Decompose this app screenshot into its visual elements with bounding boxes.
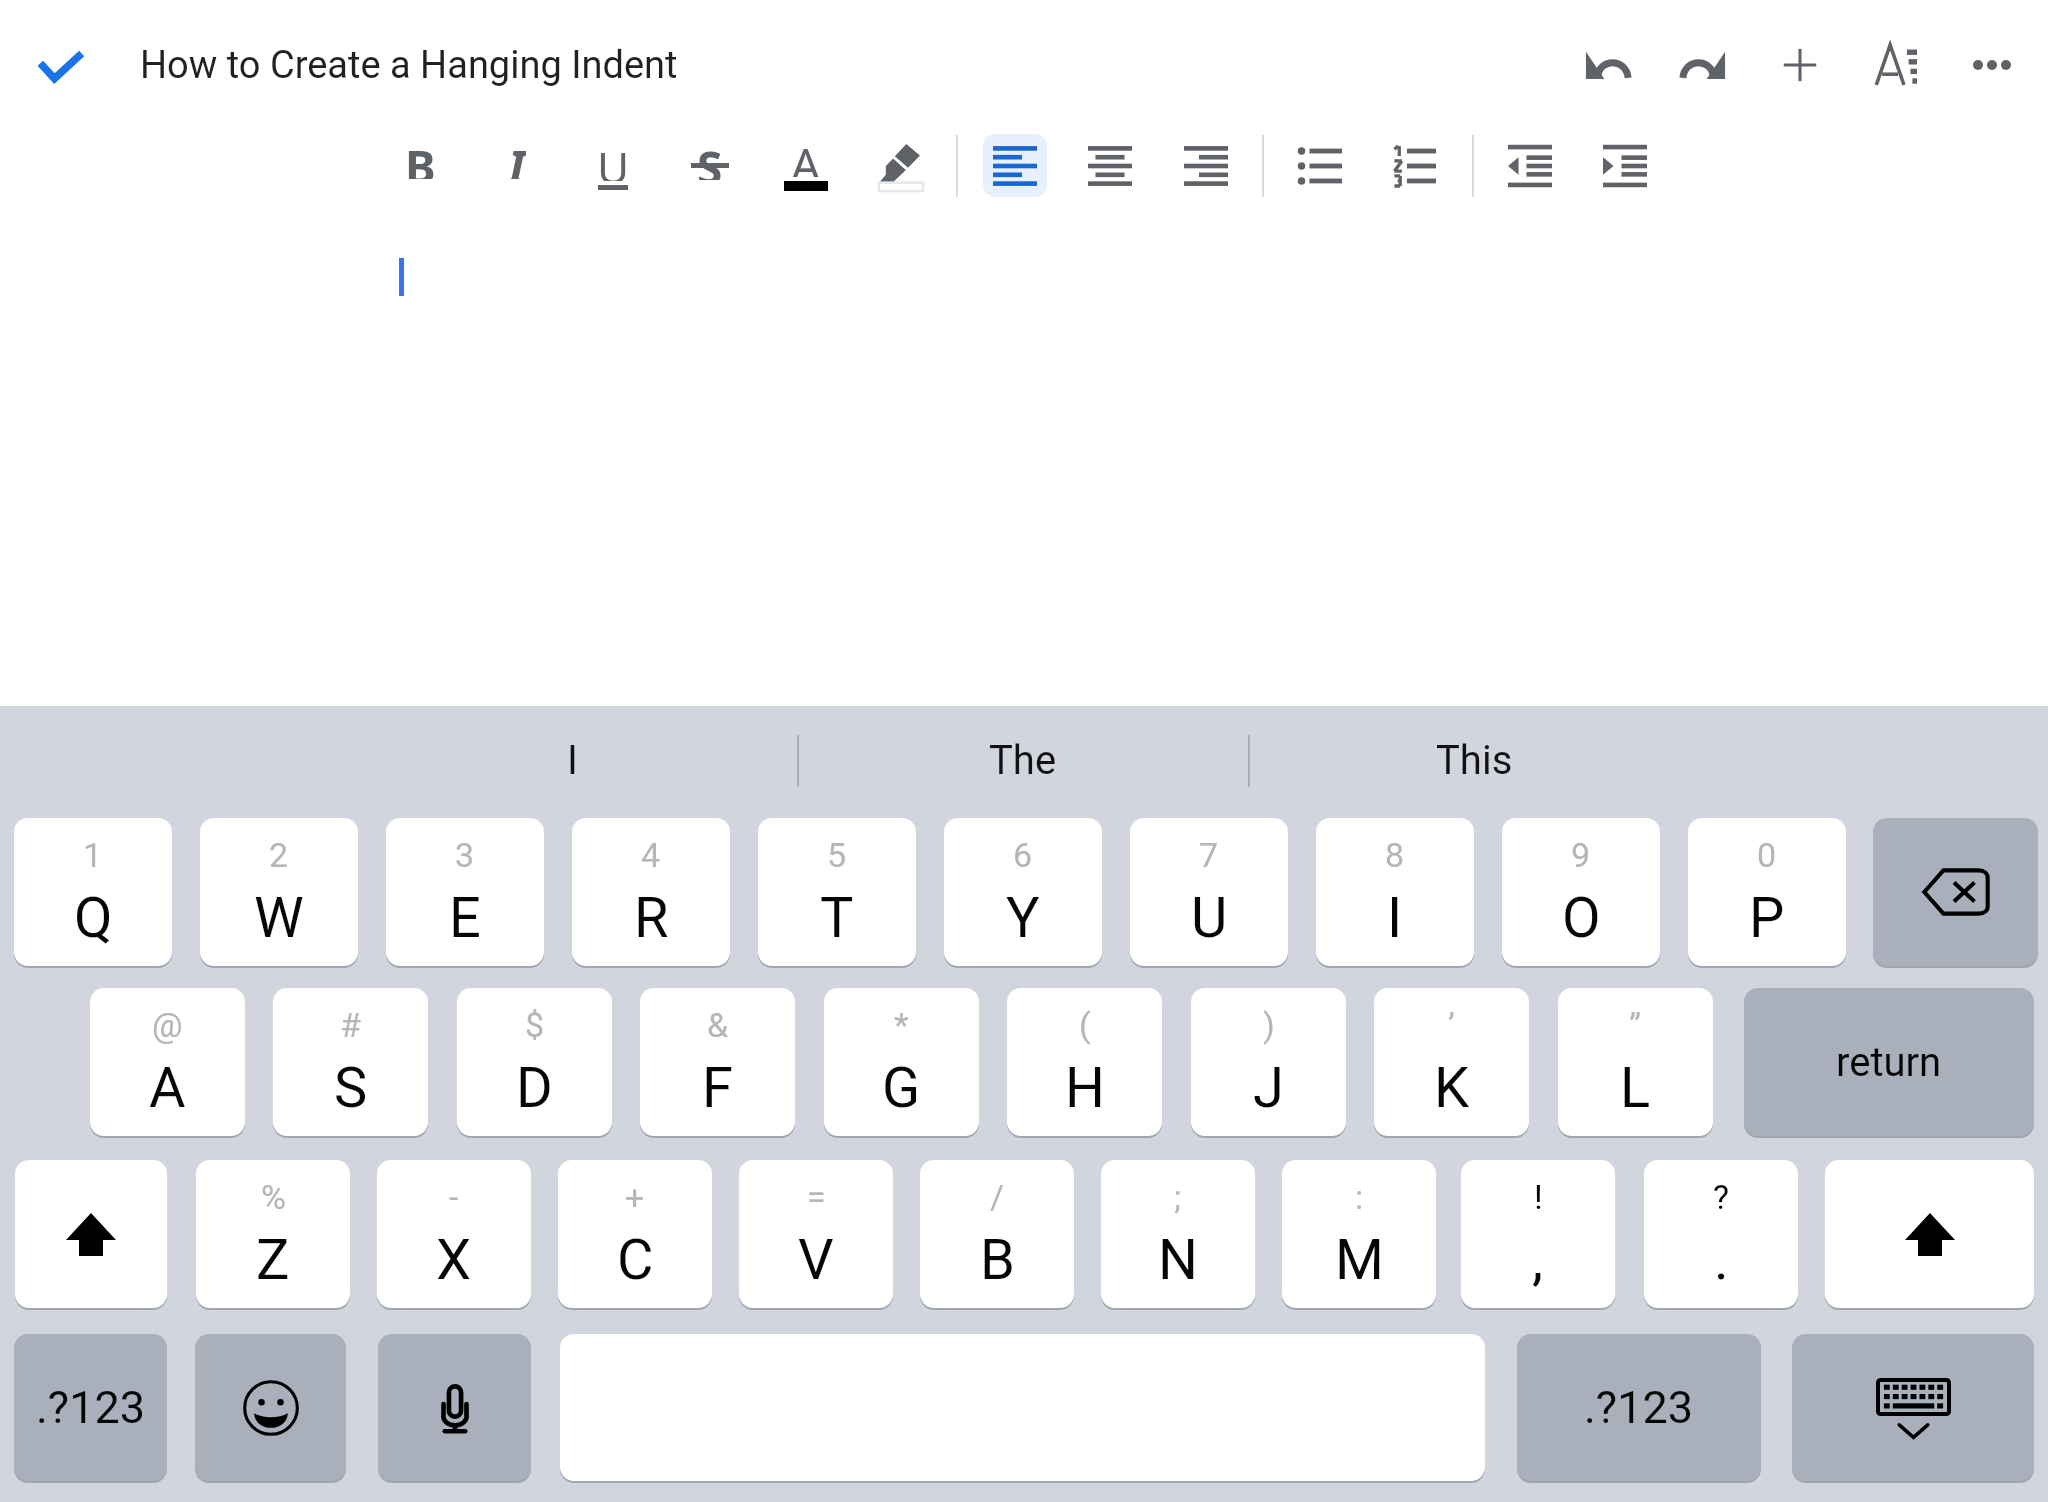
button[interactable]: Hide keyboard (1792, 1334, 2034, 1481)
button[interactable]: .?123 (14, 1334, 167, 1481)
button[interactable]: Insert (1754, 18, 1846, 112)
staticText: - (449, 1177, 459, 1217)
button[interactable]: Align left (983, 134, 1047, 197)
button[interactable]: / (920, 1160, 1074, 1308)
button[interactable]: .?123 (1517, 1334, 1761, 1481)
button[interactable]: Decrease indent (1498, 134, 1562, 197)
button[interactable]: & (640, 988, 795, 1136)
button[interactable]: More options (1946, 18, 2038, 112)
staticText: 7 (1199, 835, 1219, 875)
button[interactable]: Underline (581, 134, 645, 197)
button[interactable]: Numbered list (1382, 134, 1446, 197)
button[interactable]: Dictate (378, 1334, 531, 1481)
button[interactable]: 9 (1502, 818, 1660, 966)
staticText: N (1158, 1227, 1198, 1293)
button[interactable]: # (273, 988, 428, 1136)
button[interactable]: * (824, 988, 979, 1136)
staticText: J (1253, 1055, 1284, 1121)
staticText: U (597, 137, 630, 181)
button[interactable]: Increase indent (1593, 134, 1657, 197)
button[interactable]: @ (90, 988, 245, 1136)
button[interactable]: Done (18, 20, 104, 112)
button[interactable]: Emoji (195, 1334, 346, 1481)
button[interactable]: Shift (15, 1160, 167, 1308)
staticText: O (1562, 885, 1601, 951)
button[interactable]: ( (1007, 988, 1162, 1136)
button[interactable]: Text color (774, 134, 838, 197)
staticText: ) (1263, 1005, 1275, 1045)
button[interactable]: Backspace (1873, 818, 2038, 966)
staticText: & (707, 1005, 729, 1045)
staticText: P (1749, 885, 1785, 951)
staticText: K (1434, 1055, 1470, 1121)
button[interactable]: ? (1644, 1160, 1798, 1308)
button[interactable]: return (1744, 988, 2034, 1136)
staticText: A (149, 1055, 186, 1121)
button[interactable]: 3 (386, 818, 544, 966)
button[interactable]: ” (1558, 988, 1713, 1136)
staticText: % (261, 1177, 286, 1217)
staticText: R (634, 885, 669, 951)
staticText: ” (1629, 1005, 1642, 1045)
button[interactable]: Strikethrough (678, 134, 742, 197)
staticText: : (1355, 1177, 1364, 1217)
staticText: $ (525, 1005, 545, 1045)
button[interactable]: ; (1101, 1160, 1255, 1308)
button[interactable]: 5 (758, 818, 916, 966)
staticText: F (702, 1055, 733, 1121)
button[interactable]: The (799, 706, 1247, 814)
staticText: 5 (827, 835, 847, 875)
staticText: W (254, 885, 304, 951)
staticText: S (334, 1055, 368, 1121)
staticText: A (791, 134, 821, 177)
staticText: 8 (1385, 835, 1405, 875)
button[interactable]: 4 (572, 818, 730, 966)
staticText: 0 (1757, 835, 1777, 875)
staticText: .?123 (36, 1381, 146, 1434)
staticText: G (882, 1055, 921, 1121)
button[interactable]: + (558, 1160, 712, 1308)
staticText: # (340, 1005, 361, 1045)
button[interactable]: I (348, 706, 796, 814)
staticText: How to Create a Hanging Indent (140, 43, 678, 88)
button[interactable]: This (1250, 706, 1698, 814)
button[interactable]: 1 (14, 818, 172, 966)
button[interactable]: 6 (944, 818, 1102, 966)
staticText: = (807, 1177, 826, 1217)
staticText: @ (152, 1005, 183, 1045)
button[interactable]: Text formatting (1850, 18, 1942, 112)
button[interactable]: $ (457, 988, 612, 1136)
button[interactable]: Align right (1174, 134, 1238, 197)
button[interactable]: Bulleted list (1288, 134, 1352, 197)
button[interactable]: : (1282, 1160, 1436, 1308)
button[interactable]: Align center (1078, 134, 1142, 197)
button[interactable]: ! (1461, 1160, 1615, 1308)
staticText: return (1836, 1039, 1942, 1086)
button[interactable]: Shift (1825, 1160, 2034, 1308)
button[interactable]: Bold (388, 134, 452, 197)
staticText: L (1620, 1055, 1651, 1121)
button[interactable]: Italic (485, 134, 549, 197)
button[interactable]: ’ (1374, 988, 1529, 1136)
button[interactable]: = (739, 1160, 893, 1308)
button[interactable]: Undo (1562, 18, 1654, 112)
button[interactable]: 8 (1316, 818, 1474, 966)
staticText: B (980, 1227, 1015, 1293)
staticText: This (1436, 737, 1513, 784)
button[interactable]: % (196, 1160, 350, 1308)
staticText: . (1714, 1227, 1729, 1293)
button[interactable]: 7 (1130, 818, 1288, 966)
button[interactable]: ) (1191, 988, 1346, 1136)
button[interactable]: - (377, 1160, 531, 1308)
staticText: S (697, 136, 723, 180)
button[interactable]: Redo (1657, 18, 1749, 112)
staticText: V (798, 1227, 834, 1293)
button[interactable]: 2 (200, 818, 358, 966)
staticText: ; (1174, 1177, 1182, 1217)
button[interactable]: Highlight (869, 134, 933, 197)
staticText: X (436, 1227, 472, 1293)
staticText: M (1335, 1227, 1384, 1293)
button[interactable]: 0 (1688, 818, 1846, 966)
staticText: ? (1713, 1177, 1730, 1217)
